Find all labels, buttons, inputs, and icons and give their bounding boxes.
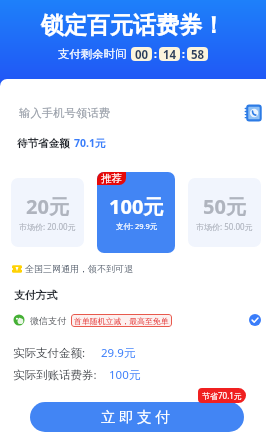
button[interactable]: 立即支付 [30,402,244,432]
staticText: 市场价: 20.00元 [19,221,76,232]
staticText: 58 [191,47,205,61]
staticText: 20元 [26,193,69,220]
staticText: 微信支付 [30,315,66,326]
button[interactable]: 50元 [188,178,261,247]
staticText: 100元 [109,367,141,383]
staticText: 实际支付金额: [13,345,86,361]
staticText: 100元 [109,193,164,220]
button[interactable]: 微信支付 [13,312,261,328]
staticText: : [182,47,185,61]
staticText: 实际到账话费券: [13,367,97,383]
button[interactable]: 20元 [11,178,84,247]
staticText: 00 [135,47,149,61]
staticText: 29.9元 [101,345,136,361]
staticText: 立即支付 [101,408,174,426]
staticText: 输入手机号领话费 [19,106,111,120]
staticText: 70.1元 [74,136,106,150]
staticText: 待节省金额 [17,137,70,150]
staticText: 节省70.1元 [202,390,242,401]
staticText: 市场价: 50.00元 [196,221,253,232]
staticText: 支付: 29.9元 [116,221,158,231]
staticText: 50元 [203,193,246,220]
button[interactable]: 100元 [97,172,175,253]
staticText: 推荐 [101,172,122,185]
staticText: 首单随机立减，最高至免单 [74,316,169,326]
staticText: 支付方式 [14,289,58,303]
staticText: 全国三网通用，领不到可退 [25,263,133,274]
staticText: 支付剩余时间 [58,47,127,61]
staticText: : [154,47,157,61]
staticText: 14 [163,47,177,61]
button[interactable]: Pick contact [245,105,261,121]
staticText: 锁定百元话费券！ [0,11,266,40]
